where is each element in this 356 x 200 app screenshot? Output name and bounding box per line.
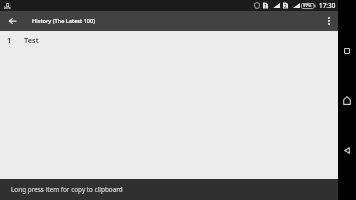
staticText: 1 (7, 35, 12, 45)
staticText: 0 (6, 1, 9, 8)
button[interactable]: Home (338, 90, 356, 111)
staticText: History (The Latest 100) (32, 17, 96, 25)
staticText: 2 (284, 3, 287, 9)
staticText: Test (24, 35, 39, 45)
staticText: Long press item for copy to clipboard (11, 185, 123, 194)
button[interactable]: Recent apps (338, 40, 356, 61)
button[interactable]: More options (320, 12, 338, 30)
staticText: kb/s (4, 6, 11, 10)
button[interactable]: Navigate up (2, 11, 22, 31)
staticText: 97% (303, 3, 312, 9)
button[interactable]: Back (338, 140, 356, 161)
staticText: 1 (264, 3, 267, 9)
staticText: 17:30 (319, 1, 336, 10)
button[interactable]: 1 (0, 31, 338, 48)
